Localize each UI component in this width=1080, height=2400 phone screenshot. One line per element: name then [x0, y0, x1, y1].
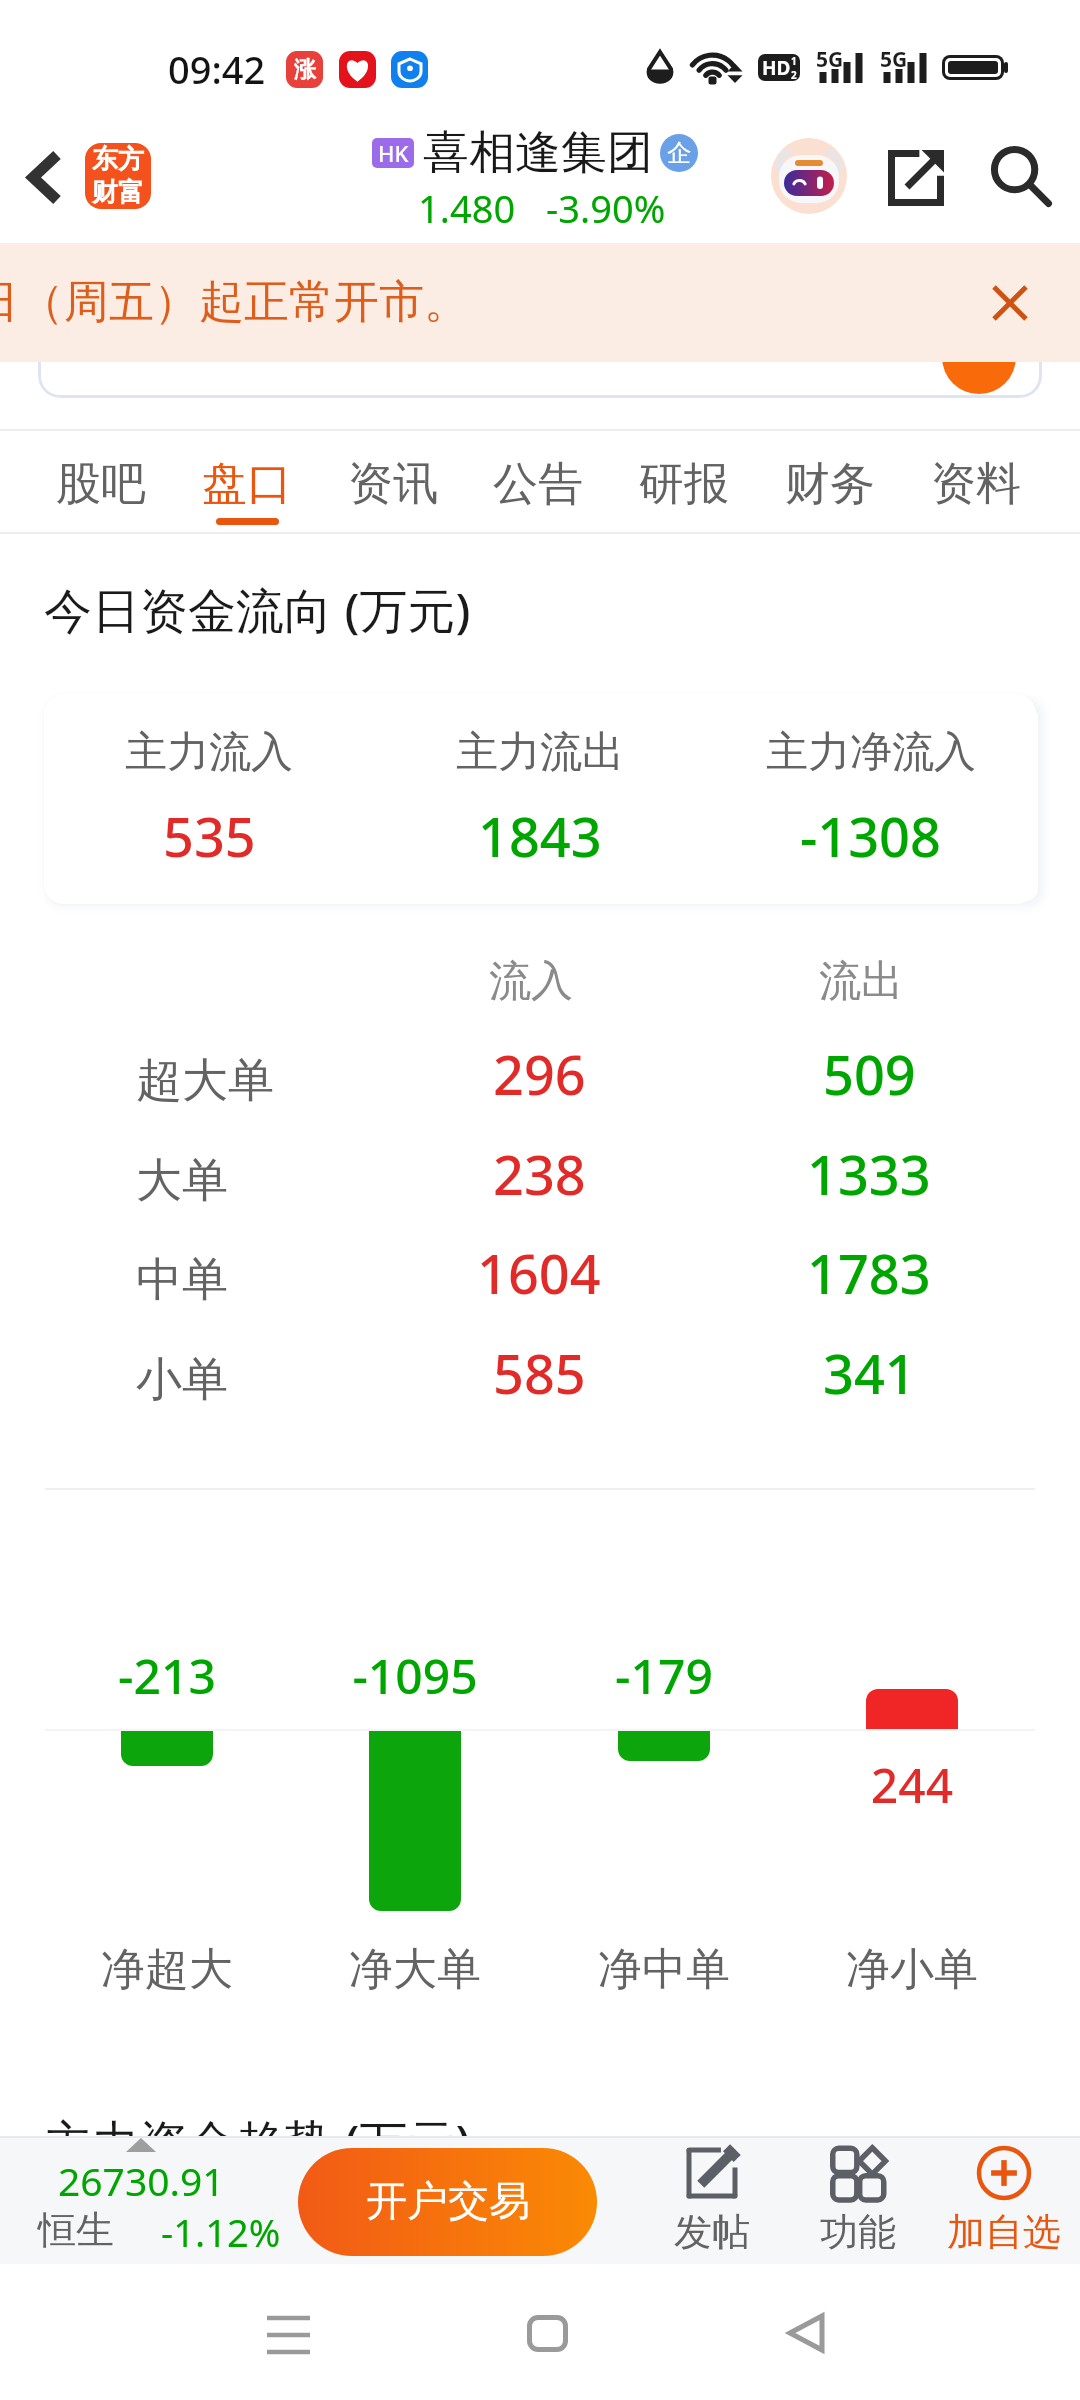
- button[interactable]: Close banner: [980, 273, 1040, 333]
- staticText: 发帖: [674, 2208, 750, 2256]
- staticText: 盘口: [202, 456, 292, 513]
- staticText: 09:42: [168, 43, 266, 95]
- button[interactable]: 加自选: [934, 2136, 1074, 2264]
- staticText: 东方: [92, 143, 144, 176]
- button[interactable]: 盘口: [181, 431, 313, 532]
- button[interactable]: Back: [761, 2288, 851, 2378]
- button[interactable]: 超大单: [0, 1052, 1080, 1152]
- staticText: 主力净流入: [766, 726, 976, 779]
- button[interactable]: 开户交易: [298, 2148, 597, 2256]
- button[interactable]: Recents: [243, 2288, 333, 2378]
- staticText: 主力流出: [456, 726, 624, 779]
- button[interactable]: 股吧: [35, 431, 167, 532]
- button[interactable]: 发帖: [642, 2136, 782, 2264]
- staticText: 涨: [294, 56, 316, 84]
- staticText: 5G: [816, 45, 844, 74]
- staticText: 财务: [785, 456, 875, 513]
- staticText: 今日资金流向 (万元): [44, 577, 471, 643]
- staticText: 净小单: [782, 1942, 1042, 1997]
- staticText: 超大单: [136, 1052, 274, 1110]
- staticText: 净超大: [37, 1942, 297, 1997]
- staticText: 日（周五）起正常开市。: [0, 274, 469, 331]
- button[interactable]: Share: [880, 142, 952, 214]
- button[interactable]: 资讯: [327, 431, 459, 532]
- staticText: 中单: [136, 1251, 228, 1309]
- staticText: 流入: [489, 955, 573, 1008]
- staticText: 企: [667, 138, 691, 168]
- staticText: 1604: [477, 1236, 601, 1310]
- staticText: 开户交易: [366, 2176, 530, 2228]
- staticText: 1: [791, 54, 797, 68]
- button[interactable]: 功能: [788, 2136, 928, 2264]
- staticText: 238: [493, 1137, 586, 1211]
- button[interactable]: Back: [10, 142, 80, 212]
- button[interactable]: 研报: [618, 431, 750, 532]
- button[interactable]: 公告: [472, 431, 604, 532]
- staticText: -1.12%: [161, 2206, 281, 2258]
- button[interactable]: East Money home: [85, 143, 151, 209]
- staticText: 296: [493, 1037, 586, 1111]
- staticText: 535: [163, 799, 256, 873]
- staticText: 244: [782, 1752, 1042, 1817]
- button[interactable]: 大单: [0, 1152, 1080, 1252]
- staticText: -1095: [285, 1643, 545, 1708]
- staticText: 1843: [478, 799, 602, 873]
- staticText: 26730.91: [58, 2154, 225, 2207]
- staticText: 2: [791, 68, 797, 81]
- staticText: 大单: [136, 1152, 228, 1210]
- staticText: 1783: [807, 1236, 931, 1310]
- staticText: 1333: [807, 1137, 931, 1211]
- staticText: 加自选: [947, 2208, 1061, 2256]
- staticText: 恒生: [38, 2206, 114, 2254]
- staticText: 公告: [493, 456, 583, 513]
- staticText: HD: [762, 55, 791, 81]
- staticText: 小单: [136, 1351, 228, 1409]
- staticText: 585: [493, 1336, 586, 1410]
- staticText: 股吧: [56, 456, 146, 513]
- button[interactable]: 日（周五）起正常开市。: [0, 243, 1080, 362]
- staticText: -3.90%: [546, 182, 666, 234]
- staticText: HK: [378, 138, 409, 168]
- staticText: 资料: [931, 456, 1021, 513]
- staticText: 财富: [92, 176, 144, 209]
- button[interactable]: 主力流入: [44, 694, 1036, 904]
- button[interactable]: 财务: [764, 431, 896, 532]
- staticText: -179: [534, 1643, 794, 1708]
- button[interactable]: Home: [502, 2288, 592, 2378]
- button[interactable]: 中单: [0, 1251, 1080, 1351]
- staticText: 主力流入: [125, 726, 293, 779]
- staticText: 净大单: [285, 1942, 545, 1997]
- button[interactable]: Search: [985, 140, 1057, 212]
- staticText: 净中单: [534, 1942, 794, 1997]
- staticText: -1308: [800, 799, 941, 873]
- staticText: 喜相逢集团: [423, 124, 653, 182]
- button[interactable]: 小单: [0, 1351, 1080, 1451]
- staticText: 5G: [880, 45, 908, 74]
- staticText: -213: [37, 1643, 297, 1708]
- staticText: 341: [823, 1336, 916, 1410]
- staticText: 功能: [820, 2208, 896, 2256]
- staticText: 流出: [819, 955, 903, 1008]
- staticText: 509: [823, 1037, 916, 1111]
- staticText: 1.480: [418, 182, 516, 234]
- staticText: 主力资金趋势 (万元): [44, 2109, 471, 2175]
- staticText: 研报: [639, 456, 729, 513]
- staticText: 资讯: [348, 456, 438, 513]
- button[interactable]: 资料: [910, 431, 1042, 532]
- button[interactable]: AI assistant: [771, 138, 847, 214]
